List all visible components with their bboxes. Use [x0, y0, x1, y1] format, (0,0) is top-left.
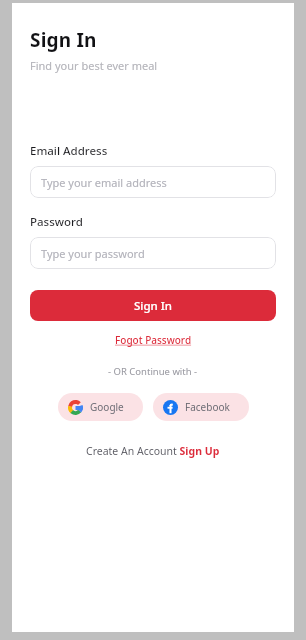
staticText: Sign In [30, 27, 97, 53]
staticText: Google [90, 400, 124, 414]
button[interactable]: Create An Account Sign Up [82, 442, 224, 460]
staticText: Find your best ever meal [30, 58, 158, 73]
staticText: Facebook [185, 400, 230, 414]
staticText: Sign In [134, 298, 173, 314]
staticText: Type your email address [41, 175, 167, 190]
staticText: Create An Account Sign Up [86, 444, 220, 458]
staticText: Fogot Password [115, 333, 192, 347]
staticText: Password [30, 214, 83, 230]
button[interactable]: Fogot Password [111, 331, 196, 349]
button[interactable]: Sign In [30, 290, 276, 321]
staticText: Type your password [41, 246, 145, 261]
button[interactable]: Facebook [153, 393, 249, 421]
button[interactable]: Google [58, 393, 143, 421]
staticText: Email Address [30, 143, 108, 159]
button[interactable]: Type your email address [30, 166, 276, 198]
staticText: - OR Continue with - [108, 365, 198, 378]
button[interactable]: Type your password [30, 237, 276, 269]
